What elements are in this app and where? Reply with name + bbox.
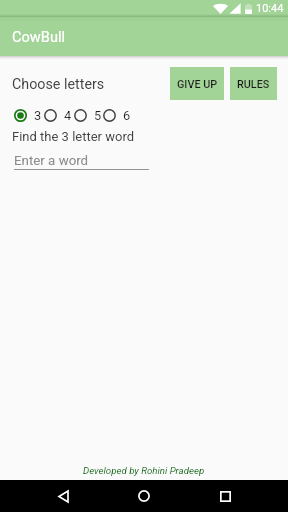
button[interactable]: 4 <box>44 108 72 122</box>
staticText: Choose letters <box>12 76 105 93</box>
staticText: 5 <box>94 108 102 122</box>
staticText: 6 <box>123 108 131 122</box>
staticText: CowBull <box>12 28 66 45</box>
button[interactable]: 3 <box>14 108 42 122</box>
staticText: GIVE UP <box>177 78 218 91</box>
button[interactable]: GIVE UP <box>170 67 224 100</box>
staticText: 4 <box>64 108 72 122</box>
button[interactable]: 6 <box>103 108 131 122</box>
staticText: 10:44 <box>256 2 284 15</box>
staticText: Find the 3 letter word <box>12 129 135 144</box>
staticText: Developed by Rohini Pradeep <box>83 465 205 476</box>
button[interactable]: Recent apps <box>207 480 243 512</box>
button[interactable]: 5 <box>74 108 102 122</box>
button[interactable]: Back <box>45 480 81 512</box>
button[interactable]: Home <box>126 480 162 512</box>
staticText: 3 <box>34 108 42 122</box>
staticText: RULES <box>237 78 270 91</box>
staticText: Enter a word <box>14 153 89 169</box>
button[interactable]: RULES <box>230 67 277 100</box>
